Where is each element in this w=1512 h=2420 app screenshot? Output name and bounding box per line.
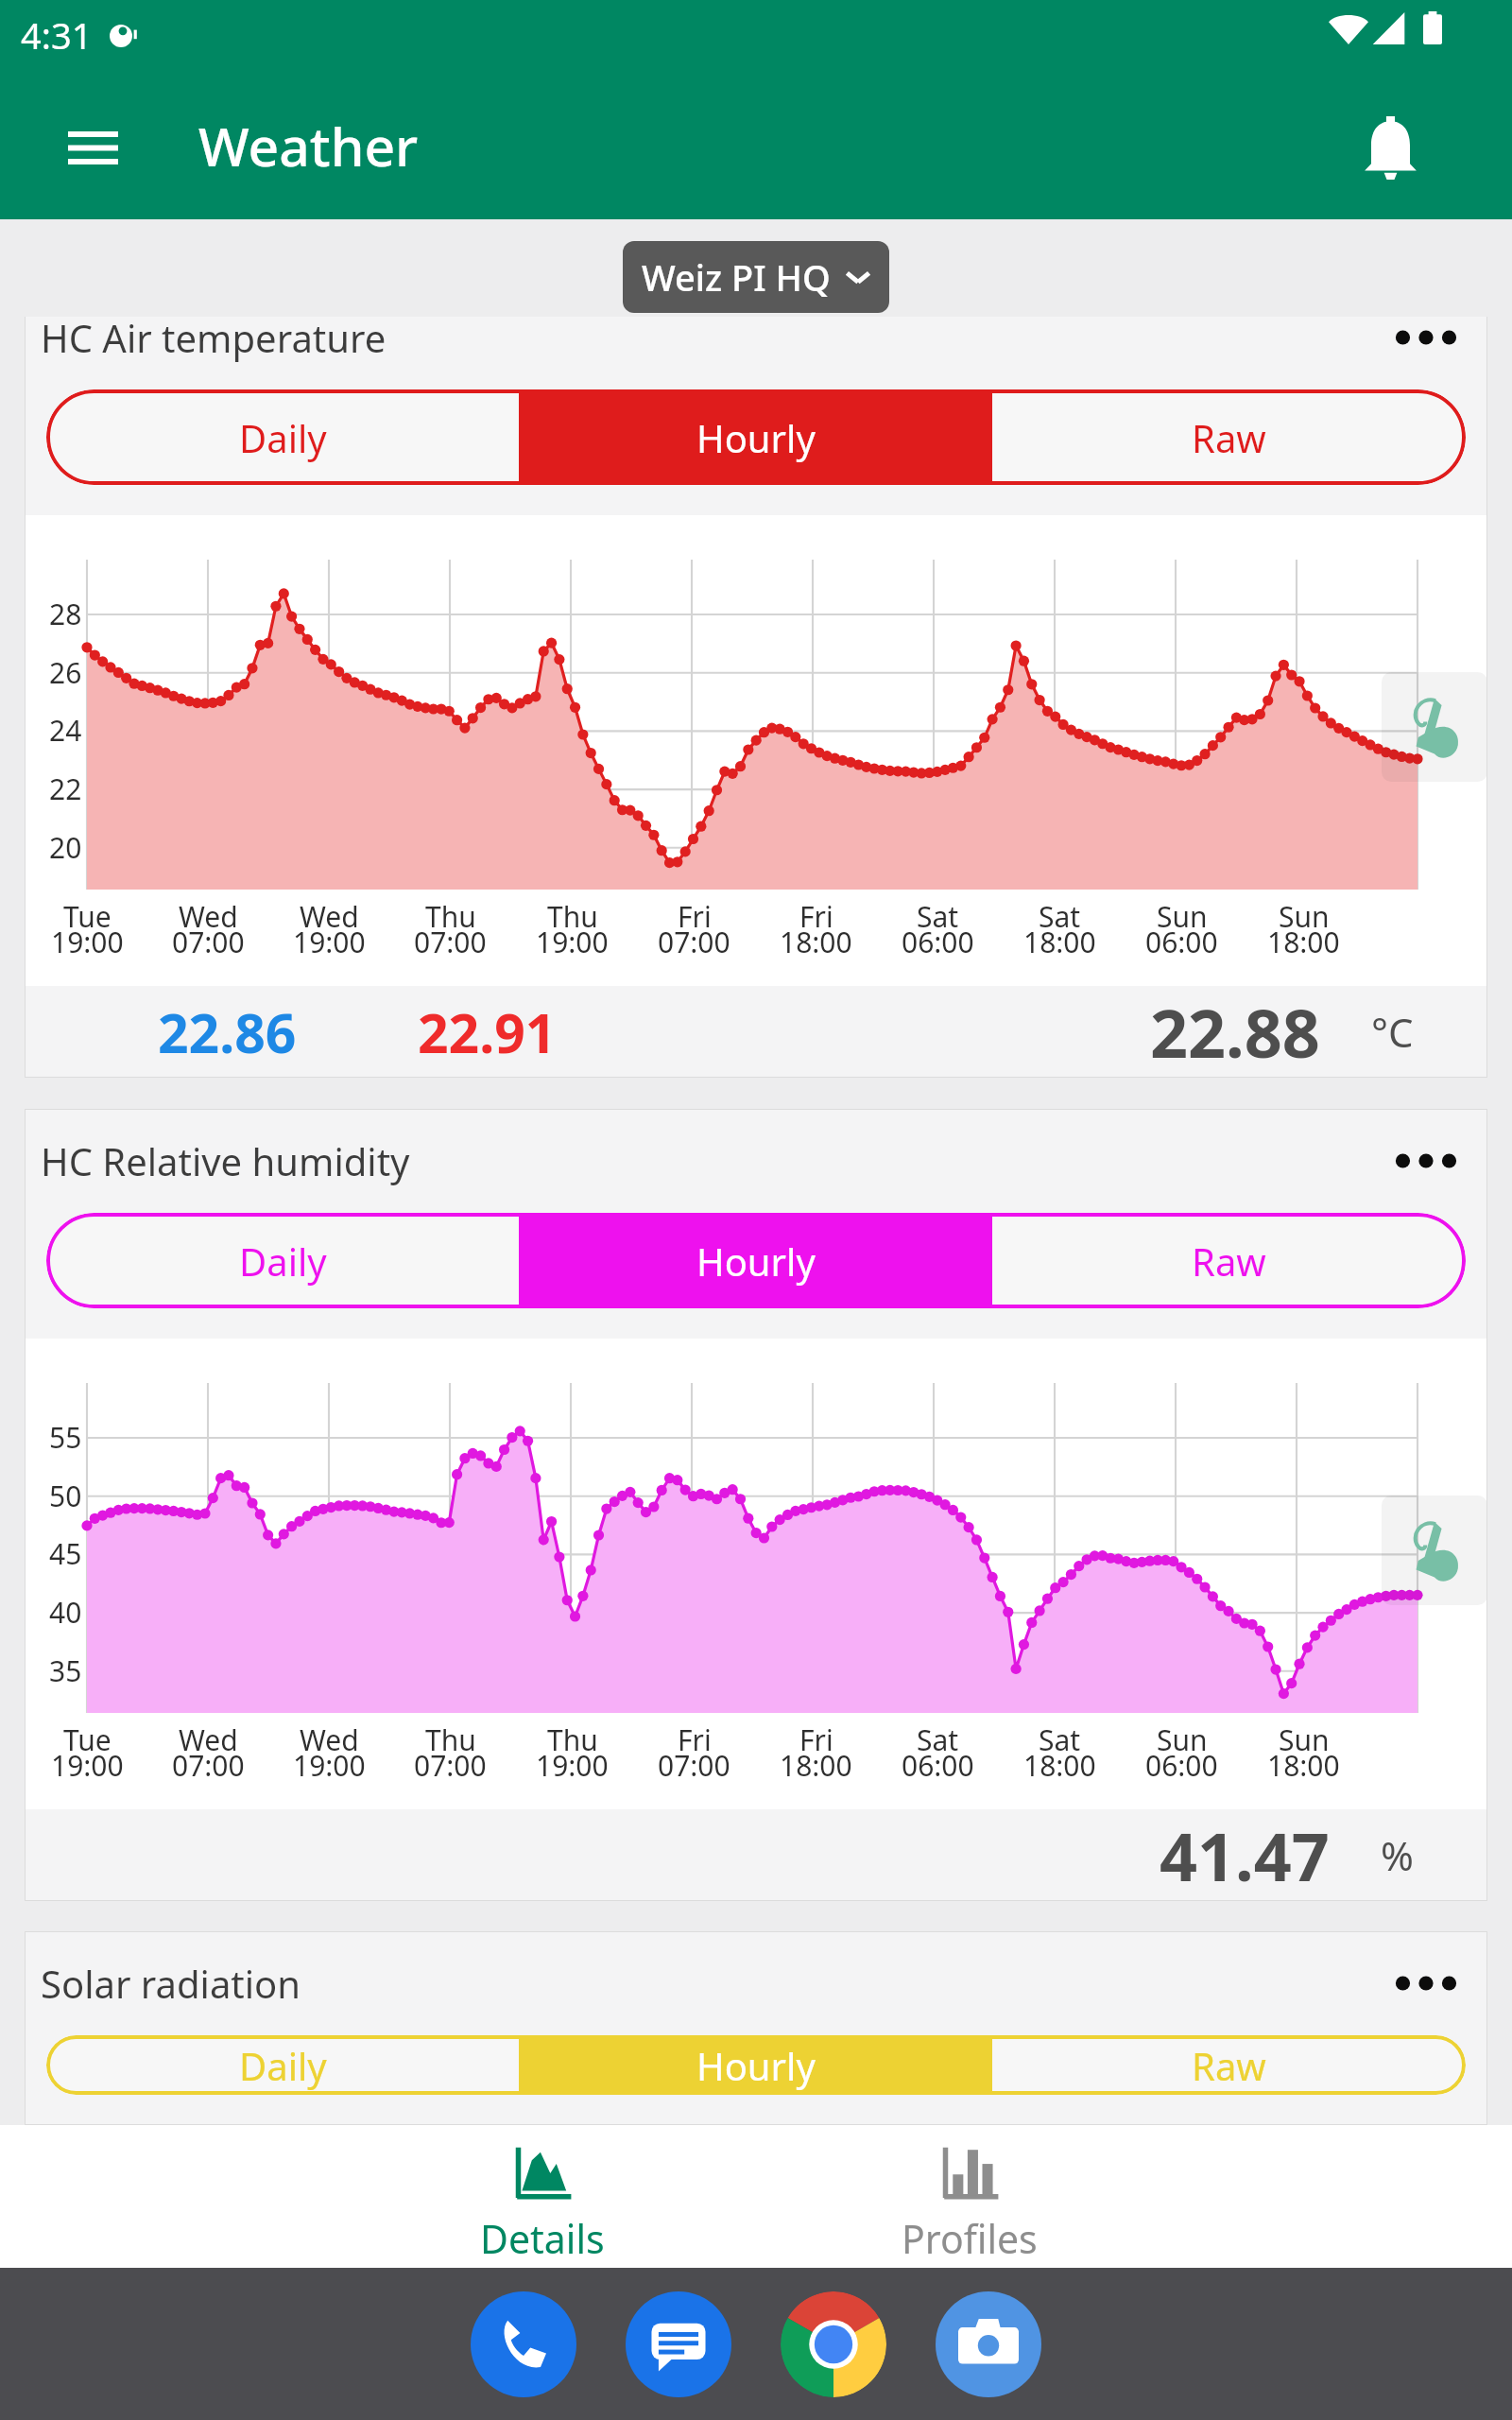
staticText: 40	[49, 1593, 82, 1632]
staticText: 22.88	[1150, 987, 1320, 1077]
button[interactable]: Details	[420, 2125, 665, 2268]
staticText: Sat	[1039, 897, 1081, 936]
staticText: 19:00	[536, 923, 609, 961]
staticText: Hourly	[696, 1236, 816, 1287]
staticText: Solar radiation	[41, 1958, 1365, 2009]
staticText: Sun	[1157, 1720, 1208, 1759]
staticText: 28	[49, 595, 82, 633]
staticText: Daily	[239, 412, 327, 463]
button[interactable]: More options	[1365, 317, 1487, 389]
staticText: Sun	[1157, 897, 1208, 936]
staticText: 24	[49, 711, 82, 750]
button[interactable]: Notifications	[1349, 107, 1431, 188]
button[interactable]: Raw	[992, 389, 1466, 485]
staticText: Tue	[63, 1720, 112, 1759]
staticText: 18:00	[1023, 923, 1096, 961]
staticText: Wed	[300, 897, 359, 936]
staticText: 26	[49, 653, 82, 692]
button[interactable]: More options	[1365, 1931, 1487, 2035]
staticText: 4:31	[21, 10, 93, 60]
button[interactable]: Hourly	[519, 2035, 992, 2095]
staticText: 20	[49, 828, 82, 867]
button[interactable]: Phone	[471, 2291, 576, 2397]
staticText: 07:00	[658, 1746, 730, 1785]
staticText: HC Air temperature	[41, 317, 1365, 363]
staticText: 06:00	[902, 923, 974, 961]
button[interactable]: Weiz PI HQ	[623, 241, 889, 313]
staticText: 07:00	[414, 1746, 487, 1785]
staticText: 55	[49, 1418, 82, 1457]
staticText: Sat	[917, 1720, 959, 1759]
staticText: HC Relative humidity	[41, 1135, 1365, 1186]
staticText: 07:00	[414, 923, 487, 961]
staticText: Daily	[239, 1236, 327, 1287]
staticText: 19:00	[536, 1746, 609, 1785]
staticText: 18:00	[780, 1746, 852, 1785]
button[interactable]: Raw	[992, 1213, 1466, 1308]
staticText: Fri	[678, 897, 712, 936]
staticText: 06:00	[1145, 923, 1218, 961]
staticText: Weiz PI HQ	[642, 252, 831, 302]
button[interactable]: Daily	[46, 1213, 519, 1308]
staticText: Thu	[425, 897, 476, 936]
staticText: °C	[1371, 1005, 1414, 1059]
staticText: 22	[49, 769, 82, 808]
staticText: 07:00	[172, 1746, 245, 1785]
staticText: Thu	[547, 897, 598, 936]
staticText: Tue	[63, 897, 112, 936]
staticText: Hourly	[696, 412, 816, 463]
staticText: 06:00	[902, 1746, 974, 1785]
staticText: 45	[49, 1534, 82, 1573]
staticText: Wed	[179, 1720, 238, 1759]
staticText: Thu	[425, 1720, 476, 1759]
staticText: 06:00	[1145, 1746, 1218, 1785]
button[interactable]: Messages	[626, 2291, 731, 2397]
staticText: 18:00	[780, 923, 852, 961]
button[interactable]: Hourly	[519, 1213, 992, 1308]
staticText: 19:00	[51, 1746, 124, 1785]
staticText: 22.91	[418, 995, 557, 1069]
staticText: Daily	[239, 2040, 327, 2091]
button[interactable]: More options	[1365, 1109, 1487, 1213]
staticText: Wed	[300, 1720, 359, 1759]
staticText: 19:00	[51, 923, 124, 961]
staticText: %	[1381, 1828, 1414, 1882]
staticText: 18:00	[1267, 1746, 1340, 1785]
staticText: Weather	[198, 109, 419, 182]
button[interactable]: Chrome	[781, 2291, 886, 2397]
staticText: 50	[49, 1477, 82, 1515]
staticText: Fri	[678, 1720, 712, 1759]
button[interactable]: Open navigation menu	[55, 110, 130, 185]
staticText: Fri	[799, 897, 833, 936]
staticText: 19:00	[293, 923, 366, 961]
staticText: Raw	[1192, 1236, 1266, 1287]
staticText: 07:00	[658, 923, 730, 961]
staticText: Hourly	[696, 2040, 816, 2091]
staticText: 22.86	[158, 995, 297, 1069]
staticText: Fri	[799, 1720, 833, 1759]
staticText: Raw	[1192, 412, 1266, 463]
button[interactable]: Daily	[46, 389, 519, 485]
staticText: Profiles	[902, 2212, 1038, 2265]
button[interactable]: Raw	[992, 2035, 1466, 2095]
staticText: 18:00	[1267, 923, 1340, 961]
staticText: 07:00	[172, 923, 245, 961]
button[interactable]: Daily	[46, 2035, 519, 2095]
staticText: Raw	[1192, 2040, 1266, 2091]
staticText: Wed	[179, 897, 238, 936]
button[interactable]: Profiles	[847, 2125, 1092, 2268]
staticText: 35	[49, 1651, 82, 1690]
staticText: Sat	[1039, 1720, 1081, 1759]
staticText: 18:00	[1023, 1746, 1096, 1785]
staticText: 19:00	[293, 1746, 366, 1785]
staticText: Sun	[1279, 897, 1330, 936]
button[interactable]: Camera	[936, 2291, 1041, 2397]
button[interactable]: Hourly	[519, 389, 992, 485]
staticText: 41.47	[1160, 1810, 1330, 1900]
staticText: Sun	[1279, 1720, 1330, 1759]
staticText: Details	[480, 2212, 605, 2265]
staticText: Sat	[917, 897, 959, 936]
staticText: Thu	[547, 1720, 598, 1759]
